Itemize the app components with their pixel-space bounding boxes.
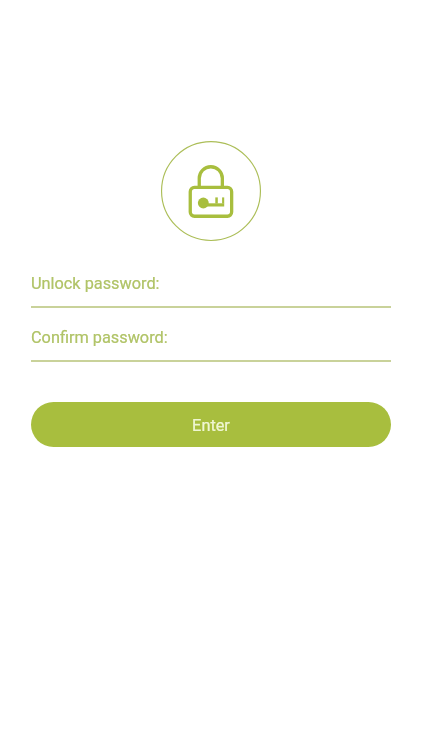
button[interactable]: Enter: [31, 402, 391, 447]
staticText: Unlock password:: [31, 274, 160, 293]
other: Locked: [161, 141, 261, 241]
button[interactable]: Confirm password:: [31, 327, 391, 363]
button[interactable]: Unlock password:: [31, 273, 391, 309]
staticText: Confirm password:: [31, 328, 168, 347]
staticText: Enter: [192, 416, 230, 435]
